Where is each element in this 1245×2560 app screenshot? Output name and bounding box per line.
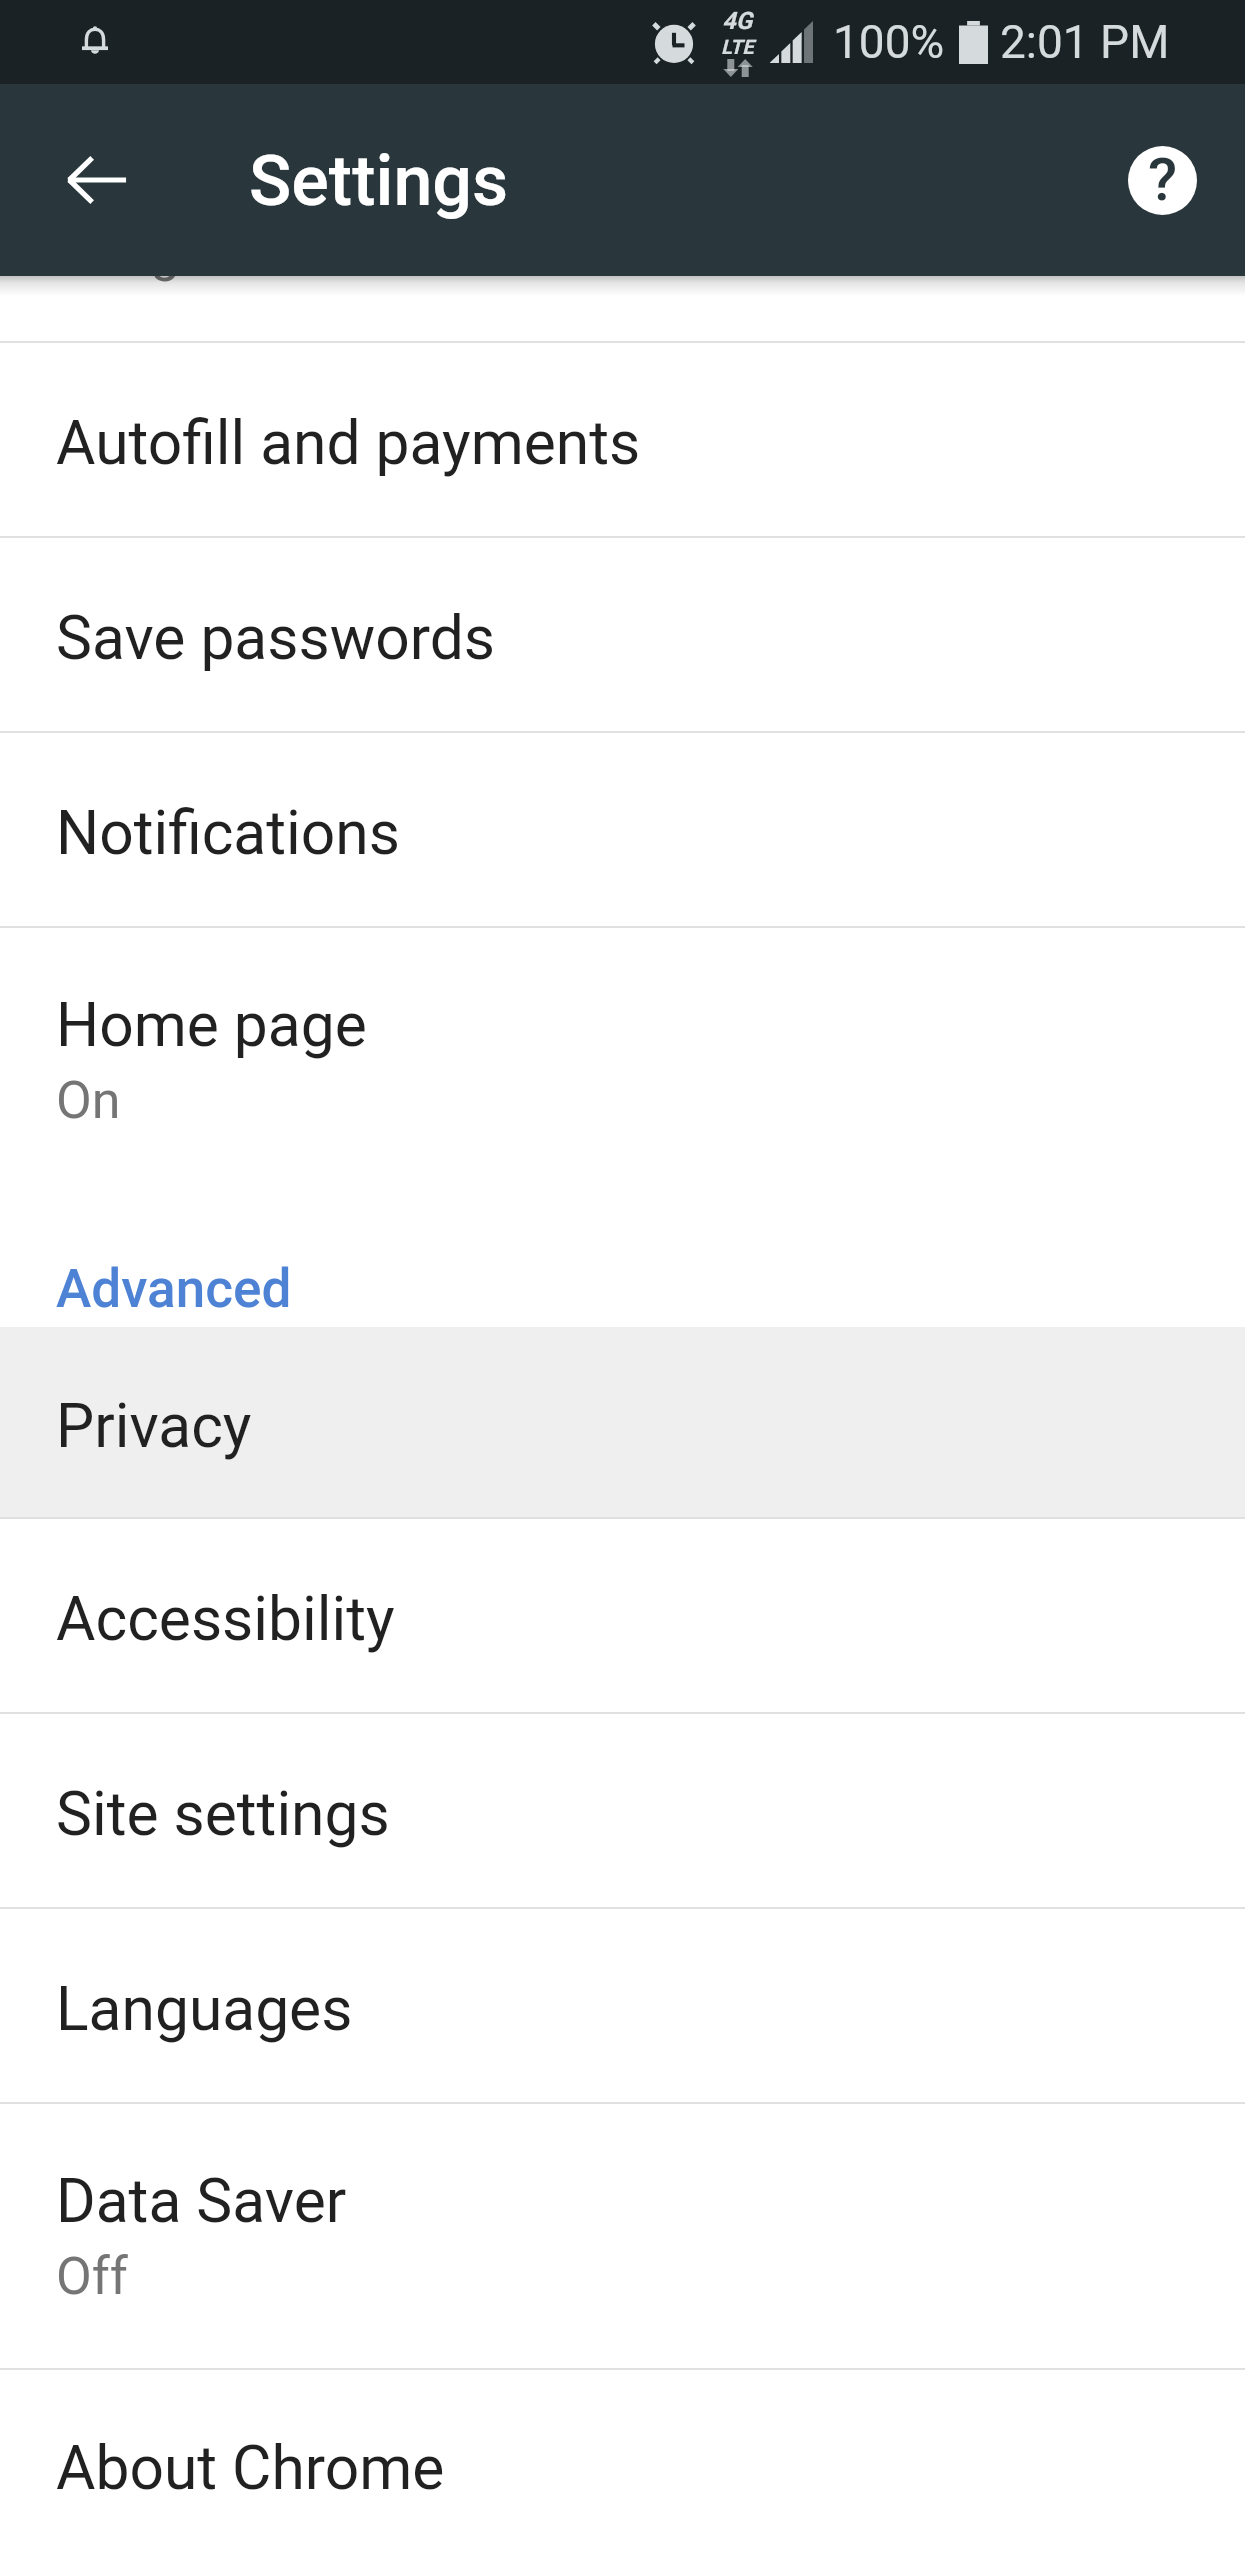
staticText: 100% bbox=[833, 15, 945, 69]
staticText: Autofill and payments bbox=[56, 408, 641, 479]
staticText: Languages bbox=[56, 1974, 353, 2045]
staticText: Site settings bbox=[56, 1779, 390, 1850]
staticText: 2:01 PM bbox=[1000, 15, 1170, 69]
button[interactable]: Site settings bbox=[0, 1714, 1245, 1909]
button[interactable]: Accessibility bbox=[0, 1519, 1245, 1714]
staticText: About Chrome bbox=[56, 2433, 445, 2504]
button[interactable]: Google bbox=[0, 276, 1245, 341]
staticText: On bbox=[56, 1070, 121, 1131]
staticText: Google bbox=[56, 222, 221, 283]
button[interactable]: Data Saver bbox=[0, 2104, 1245, 2370]
staticText: LTE bbox=[721, 35, 754, 58]
staticText: Accessibility bbox=[56, 1584, 395, 1655]
button[interactable]: Navigate up bbox=[44, 128, 148, 232]
staticText: Settings bbox=[249, 140, 509, 222]
staticText: Notifications bbox=[56, 798, 400, 869]
staticText: Data Saver bbox=[56, 2166, 347, 2237]
button[interactable]: Home page bbox=[0, 928, 1245, 1194]
button[interactable]: Privacy bbox=[0, 1327, 1245, 1519]
staticText: Advanced bbox=[56, 1258, 292, 1320]
button[interactable]: Save passwords bbox=[0, 538, 1245, 733]
staticText: 4G bbox=[722, 7, 753, 35]
staticText: Save passwords bbox=[56, 603, 495, 674]
button[interactable]: About Chrome bbox=[0, 2370, 1245, 2560]
staticText: Off bbox=[56, 2246, 128, 2307]
staticText: Privacy bbox=[56, 1391, 252, 1462]
button[interactable]: Notifications bbox=[0, 733, 1245, 928]
button[interactable]: Help and feedback bbox=[1110, 128, 1214, 232]
button[interactable]: Languages bbox=[0, 1909, 1245, 2104]
staticText: Home page bbox=[56, 990, 367, 1061]
button[interactable]: Autofill and payments bbox=[0, 343, 1245, 538]
staticText: ? bbox=[1148, 146, 1178, 213]
